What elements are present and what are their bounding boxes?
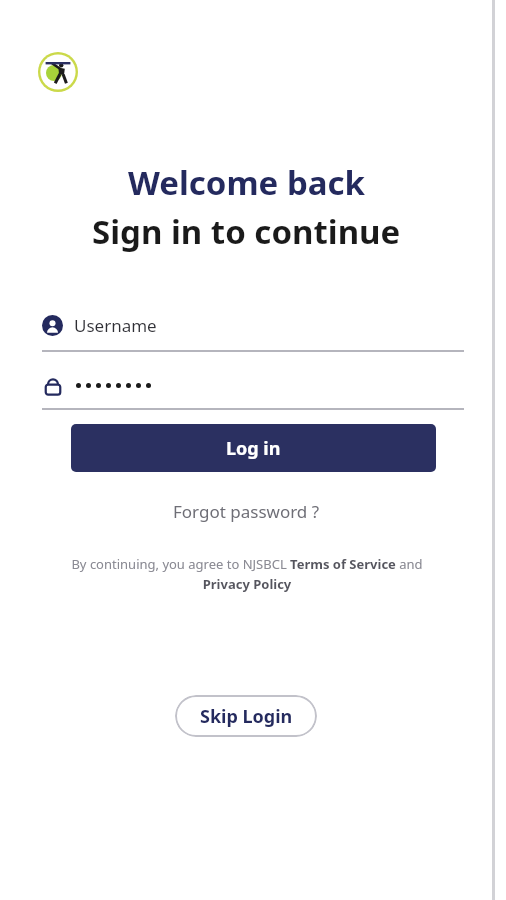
button[interactable]: Skip Login bbox=[175, 695, 317, 737]
button[interactable]: Username bbox=[42, 314, 464, 352]
staticText: Log in bbox=[226, 436, 281, 461]
button[interactable]: Log in bbox=[71, 424, 436, 472]
staticText: Skip Login bbox=[200, 704, 293, 729]
button[interactable]: By continuing, you agree to NJSBCL Terms… bbox=[54, 555, 440, 593]
staticText: Welcome back bbox=[128, 160, 366, 205]
other: NJSBCL logo bbox=[38, 52, 78, 92]
button[interactable] bbox=[42, 374, 464, 410]
staticText: Sign in to continue bbox=[92, 209, 401, 254]
staticText: Forgot password ? bbox=[173, 500, 320, 523]
button[interactable]: Forgot password ? bbox=[165, 496, 328, 527]
staticText: Username bbox=[74, 314, 157, 337]
